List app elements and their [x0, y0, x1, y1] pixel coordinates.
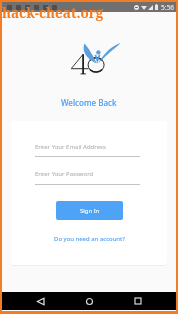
button[interactable]: Home	[78, 292, 100, 310]
button[interactable]: Back	[29, 292, 51, 310]
staticText: Sign In	[80, 207, 100, 215]
staticText: Enter Your Email Address	[35, 143, 106, 151]
button[interactable]: Do you need an account?	[54, 235, 125, 243]
staticText: Welcome Back	[61, 97, 117, 108]
staticText: hack-cheat.org	[2, 4, 104, 22]
button[interactable]: Sign In	[56, 201, 123, 220]
staticText: Enter Your Password	[35, 170, 94, 178]
button[interactable]: Recents	[127, 292, 149, 310]
staticText: 5:56	[161, 3, 174, 12]
